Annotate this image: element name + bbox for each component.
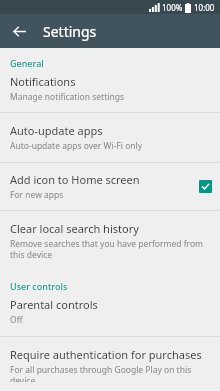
staticText: Clear local search history [10,221,139,236]
staticText: User controls [10,280,220,292]
staticText: Notifications [10,74,76,89]
staticText: Require authentication for purchases [10,347,202,362]
staticText: Add icon to Home screen [10,172,140,187]
button[interactable]: Auto-update apps [0,113,220,162]
staticText: Off [10,314,23,326]
button[interactable]: Notifications [0,70,220,112]
staticText: For all purchases through Google Play on… [10,364,212,382]
staticText: Parental controls [10,297,98,312]
button[interactable]: Clear local search history [0,211,220,270]
button[interactable]: Parental controls [0,293,220,336]
staticText: Auto-update apps over Wi-Fi only [10,140,143,152]
button[interactable]: Require authentication for purchases [0,337,220,391]
staticText: 100% [162,2,183,13]
staticText: Manage notification settings [10,91,124,103]
staticText: 10:00 [194,2,215,13]
staticText: General [10,57,220,69]
button[interactable]: Add icon to Home screen [0,163,220,210]
staticText: Settings [43,22,97,41]
button[interactable]: Back [8,20,30,42]
staticText: For new apps [10,189,64,201]
other: Add icon to Home screen checkbox [199,180,212,193]
staticText: Remove searches that you have performed … [10,238,212,260]
staticText: Auto-update apps [10,123,103,138]
